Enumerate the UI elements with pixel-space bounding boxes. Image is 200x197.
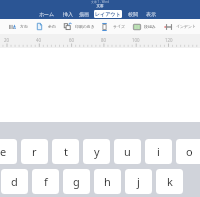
staticText: 描画 <box>79 11 89 17</box>
staticText: 文書 <box>96 4 104 9</box>
button[interactable]: 描画 <box>78 10 90 18</box>
button[interactable]: d <box>1 169 28 194</box>
other: 段組み <box>133 24 141 30</box>
staticText: レイアウト <box>95 11 121 17</box>
button[interactable]: インデント <box>162 19 197 34</box>
button[interactable]: u <box>114 139 141 164</box>
other: 印刷の向き <box>64 23 72 30</box>
staticText: h <box>104 174 111 189</box>
staticText: g <box>73 174 80 189</box>
button[interactable]: g <box>63 169 90 194</box>
button[interactable]: 表示 <box>144 10 157 18</box>
staticText: t <box>64 144 68 159</box>
button[interactable]: 印刷の向き <box>61 19 92 34</box>
staticText: e <box>0 144 7 159</box>
button[interactable]: 挿入 <box>61 10 74 18</box>
staticText: o <box>186 144 193 159</box>
button[interactable]: j <box>125 169 152 194</box>
staticText: 余白 <box>48 24 56 29</box>
button[interactable]: o <box>176 139 200 164</box>
button[interactable]: f <box>32 169 59 194</box>
button[interactable]: レイアウト <box>94 10 122 18</box>
button[interactable]: 段組み <box>130 19 156 34</box>
staticText: k <box>167 174 173 189</box>
staticText: 方向 <box>20 24 28 29</box>
staticText: y <box>94 144 100 159</box>
button[interactable]: サイズ <box>99 19 125 34</box>
staticText: サイズ <box>113 24 125 29</box>
button[interactable]: i <box>145 139 172 164</box>
button[interactable]: e <box>0 139 17 164</box>
staticText: 100 <box>132 37 140 43</box>
staticText: r <box>32 144 37 159</box>
staticText: f <box>44 174 48 189</box>
staticText: 80 <box>101 37 107 43</box>
staticText: 校閲 <box>128 11 138 17</box>
other: サイズ <box>102 23 107 31</box>
staticText: 挿入 <box>63 11 73 17</box>
staticText: i <box>157 144 160 159</box>
staticText: インデント <box>176 24 196 29</box>
staticText: u <box>124 144 131 159</box>
button[interactable]: 余白 <box>34 19 56 34</box>
other: インデント <box>165 24 173 30</box>
button[interactable]: y <box>83 139 110 164</box>
staticText: 20 <box>4 37 10 43</box>
button[interactable]: r <box>21 139 48 164</box>
button[interactable]: t <box>52 139 79 164</box>
button[interactable]: 校閲 <box>126 10 139 18</box>
staticText: 段組み <box>144 24 156 29</box>
button[interactable]: 文字列の方向 <box>6 19 28 34</box>
staticText: 120 <box>165 37 173 43</box>
other: 文字列の方向 <box>9 24 16 29</box>
staticText: ホーム <box>39 11 55 17</box>
staticText: 文書 1 - Word <box>91 0 109 4</box>
staticText: 印刷の向き <box>75 24 95 29</box>
button[interactable]: ホーム <box>38 10 55 18</box>
staticText: j <box>137 174 140 189</box>
staticText: 表示 <box>146 11 156 17</box>
button[interactable]: h <box>94 169 121 194</box>
staticText: 40 <box>36 37 42 43</box>
staticText: d <box>11 174 18 189</box>
button[interactable]: k <box>156 169 183 194</box>
staticText: 60 <box>69 37 75 43</box>
other: 余白 <box>37 23 42 30</box>
